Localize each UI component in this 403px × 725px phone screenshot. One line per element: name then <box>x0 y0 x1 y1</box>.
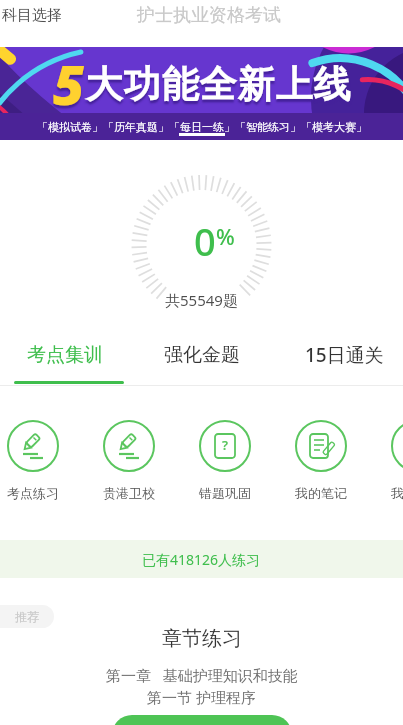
staticText: 贵港卫校 <box>103 485 155 501</box>
button[interactable]: 科目选择 <box>2 6 62 25</box>
staticText: 已有418126人练习 <box>142 550 261 569</box>
staticText: 「模拟试卷」「历年真题」「每日一练」「智能练习」「模考大赛」 <box>37 120 367 134</box>
staticText: 5 <box>53 47 85 121</box>
staticText: 我的笔记 <box>295 485 347 501</box>
staticText: 大功能全新上线 <box>85 61 351 108</box>
button[interactable]: 考点集训 <box>27 343 103 367</box>
button[interactable]: 已有418126人练习 <box>0 540 403 578</box>
button[interactable]: 我的笔记 <box>289 420 353 501</box>
staticText: 护士执业资格考试 <box>137 4 281 27</box>
staticText: 我的收藏 <box>391 485 403 501</box>
staticText: 推荐 <box>15 609 39 624</box>
staticText: 错题巩固 <box>199 485 251 501</box>
button[interactable]: 贵港卫校 <box>97 420 161 501</box>
staticText: 章节练习 <box>162 626 242 651</box>
staticText: ? <box>222 436 228 454</box>
button[interactable]: 强化金题 <box>164 343 240 367</box>
staticText: 0 <box>194 215 216 267</box>
button[interactable] <box>112 715 292 725</box>
button[interactable]: 15日通关 <box>305 342 384 368</box>
staticText: 第一节 护理程序 <box>147 687 256 707</box>
button[interactable]: 考点练习 <box>1 420 65 501</box>
staticText: 共55549题 <box>165 290 238 310</box>
button[interactable]: 我的收藏 <box>385 420 403 501</box>
staticText: % <box>216 221 235 251</box>
staticText: 第一章 基础护理知识和技能 <box>106 665 298 685</box>
button[interactable]: 5 <box>0 47 403 140</box>
staticText: 考点练习 <box>7 485 59 501</box>
button[interactable]: ? <box>193 420 257 501</box>
